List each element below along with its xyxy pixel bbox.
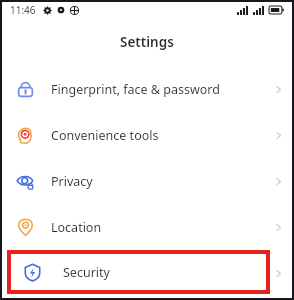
button[interactable]: Fingerprint, face & password	[0, 66, 294, 112]
staticText: Settings	[120, 33, 174, 51]
staticText: Fingerprint, face & password	[51, 81, 220, 98]
button[interactable]: Location	[0, 204, 294, 250]
staticText: Privacy	[51, 173, 93, 190]
button[interactable]: Security	[7, 250, 270, 294]
staticText: Security	[63, 264, 110, 281]
staticText: Convenience tools	[51, 127, 159, 144]
staticText: 11:46	[10, 3, 36, 17]
button[interactable]: Convenience tools	[0, 112, 294, 158]
staticText: Location	[51, 219, 102, 236]
button[interactable]: Privacy	[0, 158, 294, 204]
